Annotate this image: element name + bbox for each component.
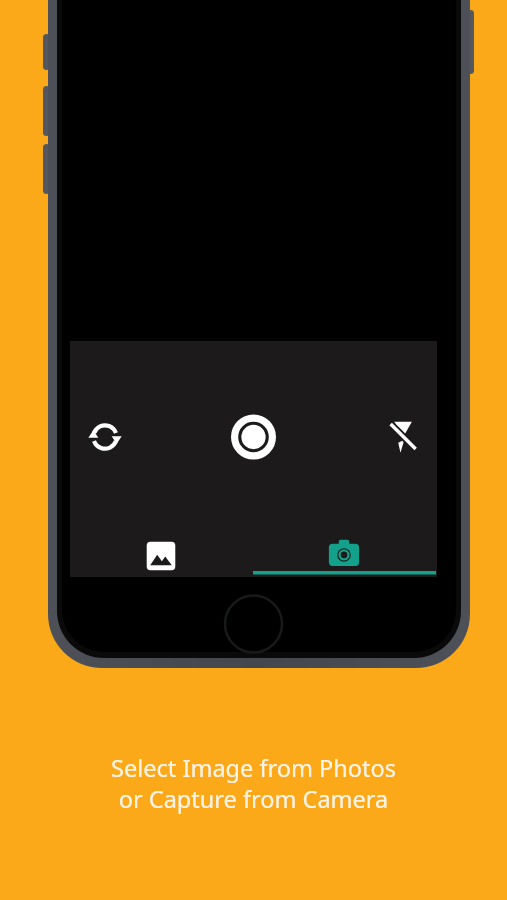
button[interactable]: Take photo (231, 414, 276, 459)
button[interactable]: Camera (253, 531, 436, 577)
button[interactable]: Switch camera (85, 417, 125, 457)
button[interactable]: Toggle flash (384, 418, 422, 456)
button[interactable]: Photos (70, 531, 253, 577)
staticText: Select Image from Photos or Capture from… (111, 752, 396, 815)
